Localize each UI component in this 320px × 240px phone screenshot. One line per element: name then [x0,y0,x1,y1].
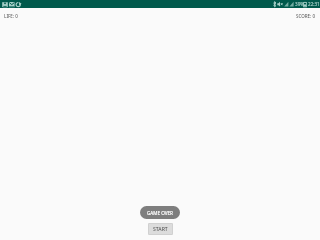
staticText: 22:31 [308,1,320,7]
button[interactable]: START [148,223,173,235]
staticText: START [153,226,168,233]
button[interactable]: GAME OVER [140,206,180,219]
staticText: GAME OVER [147,210,173,216]
staticText: 39% [295,1,305,7]
staticText: LIFE: 0 [4,13,18,19]
other: System status bar [0,0,320,8]
staticText: SCORE: 0 [296,13,316,19]
